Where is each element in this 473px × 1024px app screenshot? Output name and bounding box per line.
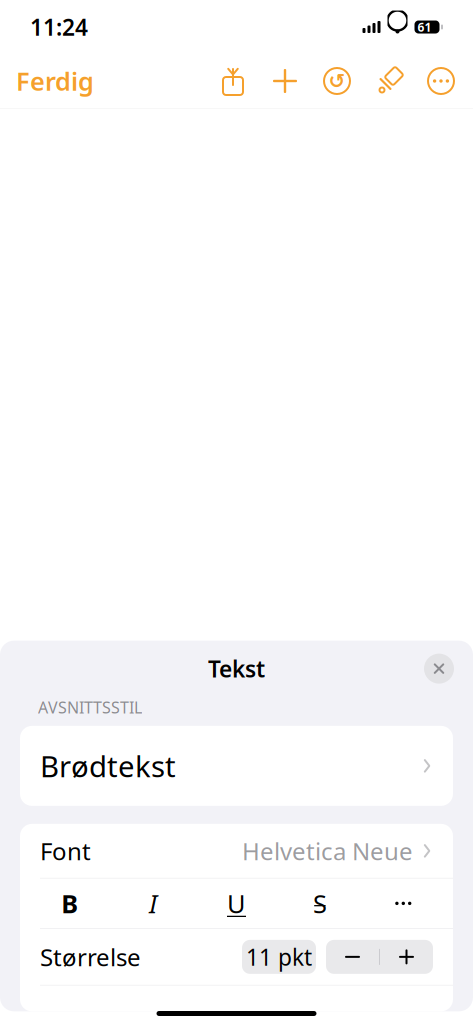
- button[interactable]: U: [195, 878, 278, 928]
- staticText: Brødtekst: [40, 746, 176, 785]
- button[interactable]: 11 pkt: [242, 940, 316, 974]
- button[interactable]: Flere tekstindstillinger: [362, 878, 445, 928]
- button[interactable]: B: [28, 878, 111, 928]
- staticText: 11 pkt: [246, 942, 312, 972]
- button[interactable]: Del: [207, 54, 259, 108]
- staticText: Størrelse: [40, 941, 141, 973]
- staticText: Tekst: [208, 654, 265, 684]
- staticText: Helvetica Neue: [242, 835, 413, 867]
- staticText: I: [149, 887, 157, 920]
- staticText: S: [313, 887, 327, 920]
- button[interactable]: Mere: [415, 54, 467, 108]
- staticText: AVSNITTSSTIL: [38, 697, 142, 718]
- staticText: B: [61, 887, 78, 920]
- staticText: Ferdig: [16, 64, 94, 98]
- button[interactable]: Forøg skriftstørrelse: [380, 940, 433, 974]
- button[interactable]: Ferdig: [0, 54, 110, 108]
- staticText: ↺: [328, 70, 345, 92]
- button[interactable]: Tilføj: [259, 54, 311, 108]
- button[interactable]: S: [278, 878, 362, 928]
- button[interactable]: I: [111, 878, 195, 928]
- staticText: Font: [40, 835, 91, 867]
- staticText: 61: [417, 19, 431, 35]
- button[interactable]: Font: [20, 824, 453, 878]
- staticText: 11:24: [30, 12, 88, 42]
- button[interactable]: Formindsk skriftstørrelse: [326, 940, 379, 974]
- button[interactable]: Format: [363, 54, 415, 108]
- button[interactable]: Brødtekst: [20, 726, 453, 806]
- button[interactable]: Fortryd: [311, 54, 363, 108]
- button[interactable]: Luk: [417, 647, 461, 691]
- staticText: U: [227, 887, 246, 920]
